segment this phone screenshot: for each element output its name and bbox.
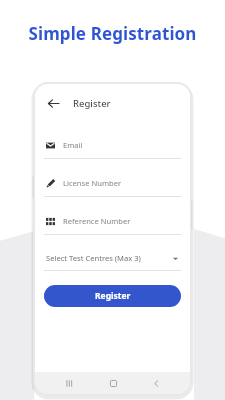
button[interactable]: Select Test Centres (Max 3) [35,246,190,271]
staticText: Email [63,140,83,150]
staticText: License Number [63,178,122,188]
button[interactable]: Recents [60,374,78,392]
button[interactable]: Register [44,285,181,307]
button[interactable]: Back [147,374,165,392]
staticText: Register [73,97,111,110]
button[interactable]: Home [104,374,122,392]
staticText: Simple Registration [0,22,225,45]
button[interactable]: Email [35,132,190,170]
staticText: Select Test Centres (Max 3) [46,253,172,263]
button[interactable]: License Number [35,170,190,208]
button[interactable]: Back [45,95,61,111]
button[interactable]: Reference Number [35,208,190,246]
staticText: Register [95,290,131,302]
staticText: Reference Number [63,216,131,226]
